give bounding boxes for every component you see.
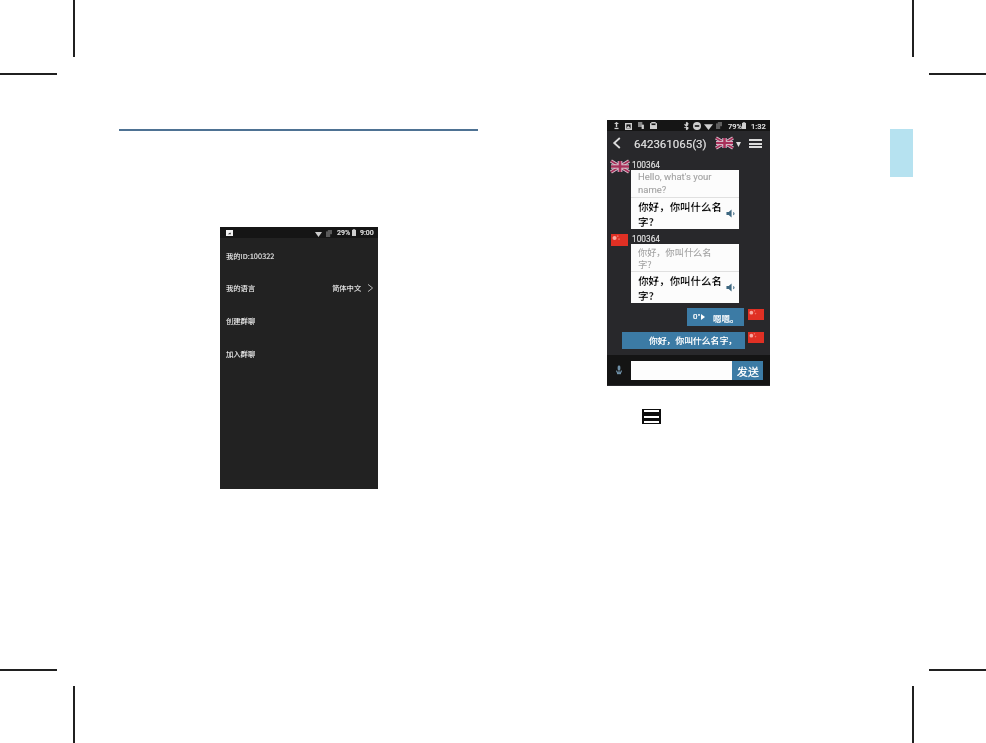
button[interactable]: 你好，你叫什么名字， [622, 332, 745, 349]
staticText: 创建群聊 [226, 316, 256, 327]
staticText: 29% [337, 229, 351, 237]
staticText: 100364 [632, 234, 660, 244]
staticText: 简体中文 [332, 283, 362, 294]
staticText: 100364 [632, 160, 660, 170]
staticText: 我的ID:100322 [226, 251, 275, 262]
staticText: 我的语言 [226, 283, 256, 294]
staticText: 你好，你叫什么名字? [638, 199, 726, 229]
button[interactable]: 加入群聊 [220, 347, 378, 361]
staticText: 642361065(3) [634, 137, 707, 150]
staticText: 你好，你叫什么名字， [649, 334, 737, 347]
button[interactable]: 0" [687, 308, 744, 326]
staticText: 79% [728, 122, 743, 131]
staticText: 0" [693, 312, 701, 321]
button[interactable]: Select language [712, 132, 753, 154]
button[interactable]: Voice input [615, 362, 623, 378]
staticText: 嗯嗯。 [713, 312, 739, 324]
button[interactable]: 我的语言 [220, 281, 378, 295]
button[interactable]: 你好，你叫什么名 字? [631, 244, 739, 303]
staticText: 你好，你叫什么名字? [638, 273, 726, 303]
staticText: 发送 [737, 363, 759, 379]
button[interactable]: 我的ID:100322 [220, 249, 378, 263]
staticText: 1:32 [751, 122, 766, 131]
button[interactable]: 创建群聊 [220, 314, 378, 328]
button[interactable]: 发送 [732, 361, 763, 380]
staticText: 加入群聊 [226, 349, 256, 360]
button[interactable]: Menu [644, 410, 659, 423]
staticText: 9:00 [360, 229, 374, 237]
button[interactable]: Menu [745, 132, 765, 154]
staticText: 你好，你叫什么名 字? [638, 245, 712, 271]
button[interactable]: Back [609, 132, 625, 154]
button[interactable]: Hello, what's your name? [631, 170, 739, 229]
staticText: Hello, what's your name? [638, 171, 733, 196]
